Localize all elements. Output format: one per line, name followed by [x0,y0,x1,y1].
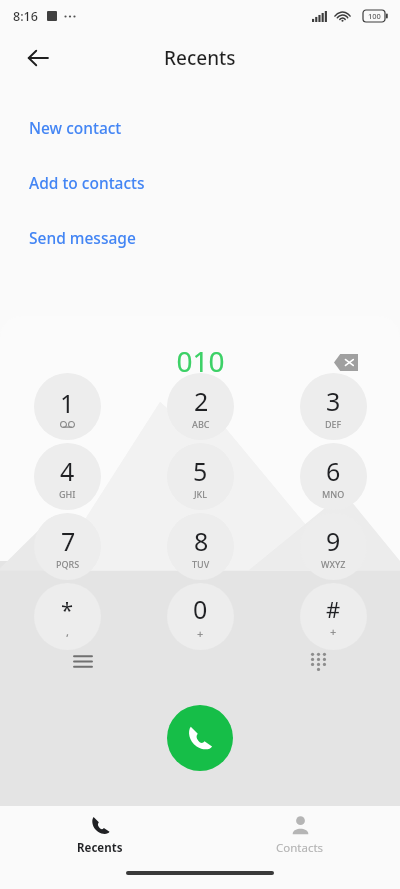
staticText: + [197,626,204,641]
button[interactable]: New contact [0,112,400,143]
button[interactable]: 6 [300,443,367,510]
button[interactable]: Back [14,34,62,82]
button[interactable]: Recents [0,806,200,864]
staticText: , [66,624,70,639]
button[interactable]: 7 [34,513,101,580]
staticText: Contacts [276,840,324,856]
staticText: + [330,624,337,639]
staticText: 7 [61,524,76,558]
staticText: MNO [322,488,345,500]
staticText: PQRS [56,558,80,570]
button[interactable]: 0 [167,583,234,650]
button[interactable]: # [300,583,367,650]
staticText: Recents [164,45,236,71]
staticText: # [326,594,341,624]
button[interactable]: 9 [300,513,367,580]
staticText: New contact [29,117,122,138]
staticText: JKL [194,488,208,500]
staticText: 2 [194,384,209,418]
staticText: ABC [192,418,210,430]
staticText: 6 [326,454,341,488]
button[interactable]: 1 [34,373,101,440]
staticText: 100 [368,11,381,21]
button[interactable]: 5 [167,443,234,510]
staticText: TUV [192,558,210,570]
staticText: Recents [77,840,123,856]
button[interactable]: Send message [0,222,400,253]
button[interactable]: * [34,583,101,650]
staticText: * [61,594,74,624]
staticText: 3 [326,384,341,418]
staticText: 9 [326,524,341,558]
staticText: Add to contacts [29,172,145,193]
staticText: 0 [193,592,208,626]
staticText: 4 [60,454,75,488]
staticText: WXYZ [321,558,346,570]
button[interactable]: Call [167,705,233,771]
button[interactable]: 3 [300,373,367,440]
staticText: Send message [29,227,136,248]
button[interactable]: 8 [167,513,234,580]
staticText: 010 [176,342,225,380]
button[interactable]: Contacts [200,806,400,864]
staticText: 8:16 [13,8,38,25]
staticText: 1 [60,386,75,420]
button[interactable]: Keypad [296,639,340,683]
button[interactable]: Add to contacts [0,167,400,198]
staticText: 5 [193,454,208,488]
button[interactable]: 2 [167,373,234,440]
button[interactable]: Delete [326,342,366,382]
staticText: GHI [59,488,76,500]
staticText: 8 [194,524,209,558]
button[interactable]: 4 [34,443,101,510]
button[interactable]: Call log [61,639,105,683]
staticText: DEF [325,418,342,430]
